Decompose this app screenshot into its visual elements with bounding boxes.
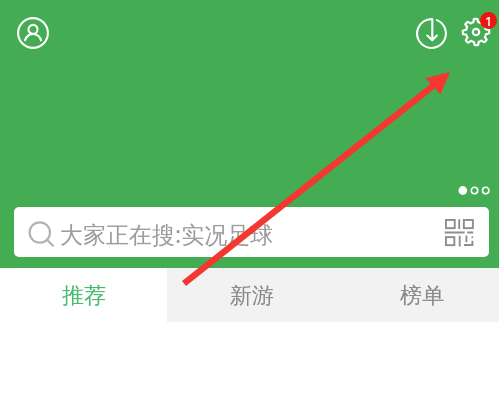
button[interactable]: 新游 [167,268,335,322]
staticText: 推荐 [62,282,106,310]
staticText: 榜单 [400,282,444,310]
button[interactable]: 推荐 [0,268,167,322]
button[interactable]: Account [17,17,49,49]
button[interactable]: Scan QR code [441,207,489,257]
button[interactable]: Settings [459,15,493,49]
button[interactable]: Downloads [416,18,447,49]
staticText: 新游 [230,282,274,310]
staticText: 大家正在搜:实况足球 [60,218,274,249]
staticText: 1 [485,12,493,29]
button[interactable]: 大家正在搜:实况足球 [14,207,489,257]
button[interactable]: 榜单 [335,268,499,322]
